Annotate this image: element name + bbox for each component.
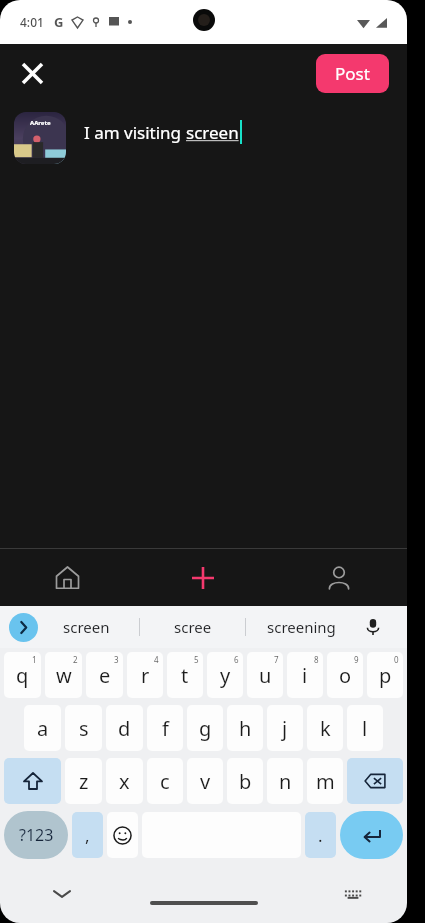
button[interactable]: p: [367, 652, 403, 698]
staticText: e: [99, 662, 111, 689]
staticText: 2: [73, 654, 78, 665]
button[interactable]: More suggestions: [9, 613, 38, 642]
staticText: z: [79, 768, 89, 795]
button[interactable]: c: [147, 758, 183, 804]
button[interactable]: screen: [34, 607, 139, 647]
button[interactable]: s: [65, 705, 102, 751]
staticText: ?123: [19, 824, 54, 846]
staticText: 7: [274, 654, 279, 665]
staticText: l: [362, 715, 368, 742]
staticText: 5: [194, 654, 199, 665]
button[interactable]: Backspace: [347, 758, 403, 804]
staticText: 8: [314, 654, 319, 665]
staticText: b: [239, 768, 252, 795]
button[interactable]: x: [106, 758, 143, 804]
staticText: h: [239, 715, 252, 742]
staticText: scree: [174, 617, 212, 637]
staticText: o: [339, 662, 352, 689]
button[interactable]: Hide keyboard: [44, 876, 80, 912]
button[interactable]: Shift: [4, 758, 61, 804]
button[interactable]: i: [287, 652, 323, 698]
button[interactable]: Close: [12, 53, 52, 93]
staticText: w: [56, 662, 72, 689]
staticText: k: [320, 715, 331, 742]
staticText: 4: [154, 654, 159, 665]
button[interactable]: e: [86, 652, 123, 698]
button[interactable]: scree: [140, 607, 245, 647]
button[interactable]: Home: [0, 549, 135, 606]
button[interactable]: Enter: [340, 811, 403, 859]
staticText: r: [141, 662, 150, 689]
button[interactable]: g: [187, 705, 223, 751]
staticText: 1: [32, 654, 37, 665]
staticText: f: [162, 715, 169, 742]
button[interactable]: ?123: [4, 811, 68, 859]
button[interactable]: z: [65, 758, 102, 804]
button[interactable]: d: [106, 705, 143, 751]
staticText: screen: [186, 121, 239, 144]
staticText: s: [79, 715, 89, 742]
button[interactable]: y: [207, 652, 243, 698]
button[interactable]: Switch keyboard: [335, 876, 371, 912]
staticText: c: [160, 768, 170, 795]
button[interactable]: .: [305, 812, 336, 858]
staticText: I am visiting: [84, 121, 186, 144]
button[interactable]: o: [327, 652, 363, 698]
button[interactable]: k: [307, 705, 343, 751]
staticText: 4:01: [20, 14, 44, 30]
staticText: p: [379, 662, 392, 689]
staticText: n: [279, 768, 292, 795]
button[interactable]: Profile photo: [14, 112, 66, 164]
button[interactable]: b: [227, 758, 263, 804]
staticText: x: [119, 768, 130, 795]
staticText: .: [318, 824, 323, 847]
staticText: m: [316, 768, 335, 795]
button[interactable]: j: [267, 705, 303, 751]
button[interactable]: v: [187, 758, 223, 804]
staticText: v: [200, 768, 211, 795]
button[interactable]: m: [307, 758, 343, 804]
staticText: screening: [267, 617, 336, 637]
staticText: y: [220, 662, 231, 689]
button[interactable]: Profile: [271, 549, 407, 606]
staticText: 9: [354, 654, 359, 665]
button[interactable]: u: [247, 652, 283, 698]
staticText: G: [54, 13, 64, 31]
staticText: 0: [394, 654, 399, 665]
staticText: g: [199, 715, 212, 742]
button[interactable]: Emoji: [107, 812, 138, 858]
button[interactable]: w: [45, 652, 82, 698]
staticText: AArete: [30, 119, 51, 127]
button[interactable]: f: [147, 705, 183, 751]
staticText: q: [16, 662, 29, 689]
staticText: 3: [114, 654, 119, 665]
staticText: t: [181, 662, 189, 689]
staticText: i: [302, 662, 308, 689]
button[interactable]: q: [4, 652, 41, 698]
button[interactable]: n: [267, 758, 303, 804]
button[interactable]: Voice input: [357, 607, 389, 647]
button[interactable]: Create post: [135, 549, 271, 606]
staticText: 6: [234, 654, 239, 665]
staticText: j: [282, 715, 288, 742]
button[interactable]: h: [227, 705, 263, 751]
staticText: u: [259, 662, 272, 689]
button[interactable]: t: [167, 652, 203, 698]
button[interactable]: Post: [316, 54, 389, 93]
button[interactable]: l: [347, 705, 383, 751]
staticText: ,: [85, 824, 90, 847]
staticText: d: [118, 715, 131, 742]
button[interactable]: a: [24, 705, 61, 751]
button[interactable]: r: [127, 652, 163, 698]
staticText: a: [37, 715, 49, 742]
button[interactable]: ,: [72, 812, 103, 858]
staticText: Post: [335, 62, 370, 85]
button[interactable]: screening: [246, 607, 357, 647]
staticText: screen: [63, 617, 110, 637]
